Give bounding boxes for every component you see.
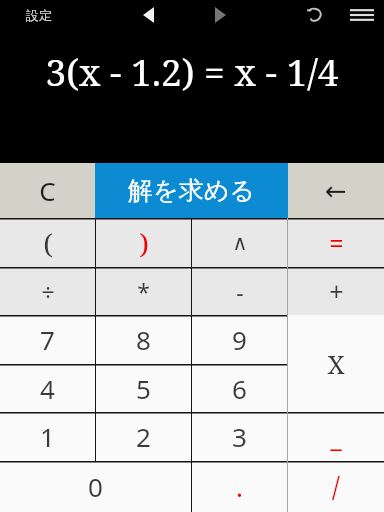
staticText: ← xyxy=(325,176,347,206)
button[interactable]: 2 xyxy=(96,412,191,461)
button[interactable]: 解を求める xyxy=(95,163,288,218)
button[interactable]: 9 xyxy=(192,315,287,364)
button[interactable]: + xyxy=(288,267,384,315)
staticText: + xyxy=(329,274,344,308)
staticText: 解を求める xyxy=(128,175,255,206)
staticText: 6 xyxy=(232,371,247,406)
button[interactable]: ( xyxy=(0,218,95,267)
button[interactable]: Next xyxy=(198,0,242,30)
button[interactable]: 8 xyxy=(96,315,191,364)
button[interactable]: X xyxy=(288,315,384,412)
button[interactable]: Undo xyxy=(298,0,332,30)
button[interactable] xyxy=(288,315,384,364)
staticText: 7 xyxy=(40,322,55,357)
button[interactable]: C xyxy=(0,163,95,218)
staticText: ) xyxy=(139,224,149,262)
button[interactable]: / xyxy=(288,461,384,512)
staticText: ∧ xyxy=(232,231,248,255)
staticText: 9 xyxy=(232,322,247,357)
button[interactable]: ) xyxy=(96,218,191,267)
staticText: 1 xyxy=(40,419,55,454)
staticText: 4 xyxy=(40,371,55,406)
staticText: X xyxy=(327,346,345,381)
button[interactable]: 4 xyxy=(0,364,95,412)
button[interactable]: 1 xyxy=(0,412,95,461)
button[interactable]: 3 xyxy=(192,412,287,461)
staticText: - xyxy=(236,276,244,307)
button[interactable]: 設定 xyxy=(26,0,84,30)
staticText: ÷ xyxy=(41,276,55,307)
button[interactable]: - xyxy=(192,267,287,315)
button[interactable]: 6 xyxy=(192,364,287,412)
button[interactable]: ÷ xyxy=(0,267,95,315)
button[interactable]: ∧ xyxy=(192,218,287,267)
staticText: 0 xyxy=(88,469,103,504)
button[interactable] xyxy=(288,364,384,412)
button[interactable]: * xyxy=(96,267,191,315)
button[interactable]: Menu xyxy=(340,0,384,30)
button[interactable]: _ xyxy=(288,412,384,461)
staticText: ( xyxy=(43,224,53,262)
staticText: 2 xyxy=(136,419,151,454)
button[interactable]: = xyxy=(288,218,384,267)
button[interactable]: 0 xyxy=(0,461,191,512)
staticText: * xyxy=(137,276,150,307)
staticText: C xyxy=(39,173,56,208)
staticText: _ xyxy=(330,419,342,454)
button[interactable]: Previous xyxy=(126,0,170,30)
button[interactable]: Backspace xyxy=(288,163,384,218)
button[interactable]: 5 xyxy=(96,364,191,412)
staticText: 5 xyxy=(136,371,151,406)
staticText: 3(x - 1.2) = x - 1/4 xyxy=(45,46,339,96)
staticText: / xyxy=(332,468,340,505)
button[interactable]: . xyxy=(192,461,287,512)
staticText: 設定 xyxy=(26,7,52,23)
button[interactable]: 7 xyxy=(0,315,95,364)
staticText: = xyxy=(329,226,344,260)
staticText: 8 xyxy=(136,322,151,357)
staticText: . xyxy=(236,469,243,504)
staticText: 3 xyxy=(232,419,247,454)
